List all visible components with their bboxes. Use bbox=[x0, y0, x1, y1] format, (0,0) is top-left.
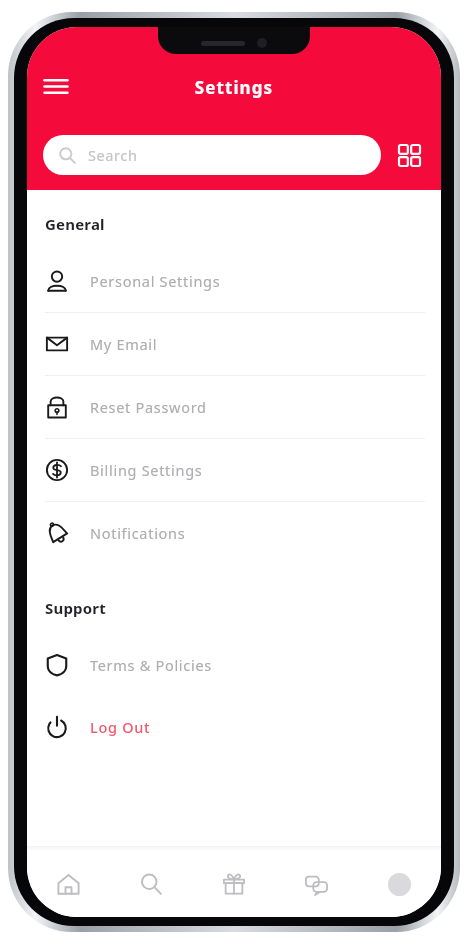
staticText: General bbox=[45, 214, 441, 234]
button[interactable]: Messages bbox=[275, 851, 358, 917]
button[interactable]: Home bbox=[27, 851, 109, 917]
button[interactable]: Log Out bbox=[27, 696, 441, 758]
button[interactable]: Personal Settings bbox=[27, 250, 441, 313]
staticText: Terms & Policies bbox=[90, 655, 212, 675]
button[interactable]: Billing Settings bbox=[27, 439, 441, 502]
button[interactable]: Menu bbox=[35, 67, 77, 109]
staticText: Personal Settings bbox=[90, 271, 221, 291]
button[interactable]: Profile bbox=[358, 851, 441, 917]
button[interactable]: Search bbox=[109, 851, 192, 917]
staticText: Billing Settings bbox=[90, 460, 203, 480]
button[interactable]: Reset Password bbox=[27, 376, 441, 439]
button[interactable]: Grid view bbox=[389, 135, 429, 175]
staticText: My Email bbox=[90, 334, 158, 354]
staticText: Log Out bbox=[90, 717, 151, 737]
button[interactable]: Notifications bbox=[27, 502, 441, 564]
staticText: Search bbox=[88, 145, 138, 165]
staticText: Reset Password bbox=[90, 397, 207, 417]
staticText: Notifications bbox=[90, 523, 186, 543]
button[interactable]: Search bbox=[43, 135, 381, 175]
button[interactable]: Gifts bbox=[192, 851, 275, 917]
staticText: Settings bbox=[27, 76, 441, 99]
button[interactable]: Terms & Policies bbox=[27, 634, 441, 696]
staticText: Support bbox=[45, 598, 441, 618]
button[interactable]: My Email bbox=[27, 313, 441, 376]
